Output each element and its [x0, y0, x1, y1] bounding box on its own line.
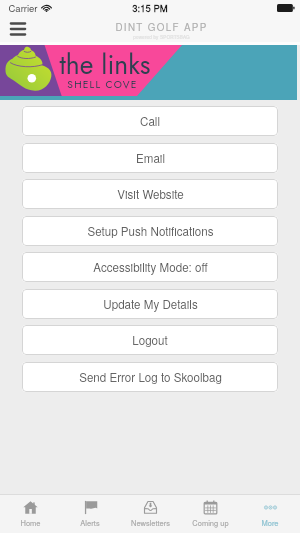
staticText: More [261, 517, 279, 528]
button[interactable]: Accessibility Mode: off [22, 252, 278, 282]
button[interactable]: Visit Website [22, 179, 278, 209]
staticText: Accessibility Mode: off [93, 259, 208, 276]
staticText: Newsletters [131, 517, 170, 528]
button[interactable]: Update My Details [22, 289, 278, 319]
staticText: Coming up [192, 517, 229, 528]
button[interactable]: Coming up [180, 495, 240, 533]
staticText: Email [136, 150, 165, 167]
staticText: Visit Website [117, 186, 184, 203]
button[interactable]: Menu [6, 17, 30, 41]
staticText: Logout [132, 332, 168, 349]
staticText: Carrier [8, 1, 38, 15]
button[interactable]: Email [22, 143, 278, 173]
staticText: Send Error Log to Skoolbag [79, 369, 222, 386]
button[interactable]: More [240, 495, 300, 533]
staticText: Update My Details [103, 296, 198, 313]
staticText: SHELL COVE [67, 77, 138, 92]
button[interactable]: Home [0, 495, 60, 533]
button[interactable]: Alerts [60, 495, 120, 533]
button[interactable]: Logout [22, 325, 278, 355]
staticText: Setup Push Notifications [87, 223, 214, 240]
staticText: Home [20, 517, 41, 528]
staticText: Alerts [80, 517, 100, 528]
staticText: DINT GOLF APP [115, 20, 208, 34]
staticText: Call [140, 113, 160, 130]
staticText: powered by SPORTSBAG [133, 34, 190, 41]
button[interactable]: Send Error Log to Skoolbag [22, 362, 278, 392]
button[interactable]: Call [22, 106, 278, 136]
staticText: 3:15 PM [132, 1, 168, 15]
staticText: the links [59, 46, 151, 84]
button[interactable]: Newsletters [120, 495, 180, 533]
button[interactable]: Setup Push Notifications [22, 216, 278, 246]
